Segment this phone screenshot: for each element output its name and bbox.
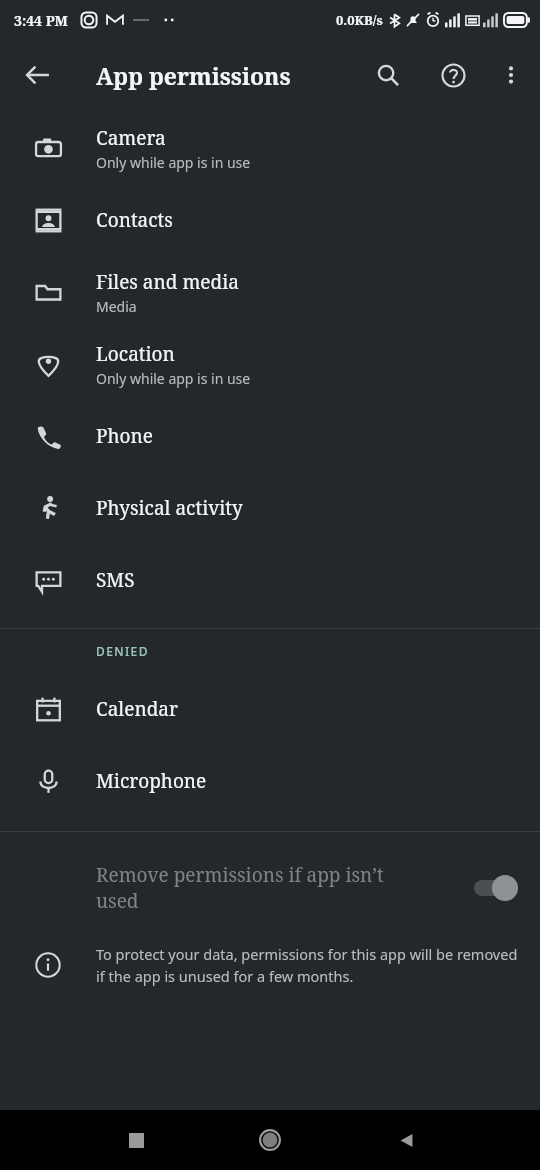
staticText: 0.0KB/s (336, 11, 383, 29)
staticText: 3:44 PM (14, 11, 68, 30)
button[interactable]: Calendar (0, 673, 540, 745)
button[interactable]: Contacts (0, 184, 540, 256)
staticText: Remove permissions if app isn’t used (96, 862, 396, 914)
button[interactable]: Phone (0, 400, 540, 472)
button[interactable]: Camera (0, 112, 540, 184)
button[interactable]: Search (362, 49, 414, 101)
button[interactable]: Remove permissions if app isn’t used (0, 832, 540, 944)
button[interactable]: Microphone (0, 745, 540, 817)
staticText: Calendar (96, 696, 178, 722)
staticText: App permissions (96, 60, 291, 91)
button[interactable]: SMS (0, 544, 540, 616)
button[interactable]: Home (242, 1112, 298, 1168)
staticText: Phone (96, 423, 153, 449)
staticText: Microphone (96, 768, 207, 794)
button[interactable]: Physical activity (0, 472, 540, 544)
button[interactable]: Back (380, 1114, 432, 1166)
staticText: Files and media (96, 269, 239, 295)
staticText: Only while app is in use (96, 369, 251, 388)
staticText: Media (96, 297, 137, 316)
staticText: Contacts (96, 207, 173, 233)
staticText: Physical activity (96, 495, 243, 521)
button[interactable]: Location (0, 328, 540, 400)
button[interactable]: Help (427, 49, 479, 101)
staticText: Location (96, 341, 175, 367)
staticText: Only while app is in use (96, 153, 251, 172)
staticText: SMS (96, 567, 135, 593)
button[interactable]: More options (486, 50, 536, 100)
button[interactable]: Recent apps (110, 1114, 162, 1166)
staticText: DENIED (96, 643, 149, 659)
button[interactable]: Files and media (0, 256, 540, 328)
staticText: Camera (96, 125, 166, 151)
button[interactable]: Back (12, 49, 64, 101)
staticText: To protect your data, permissions for th… (96, 944, 526, 986)
